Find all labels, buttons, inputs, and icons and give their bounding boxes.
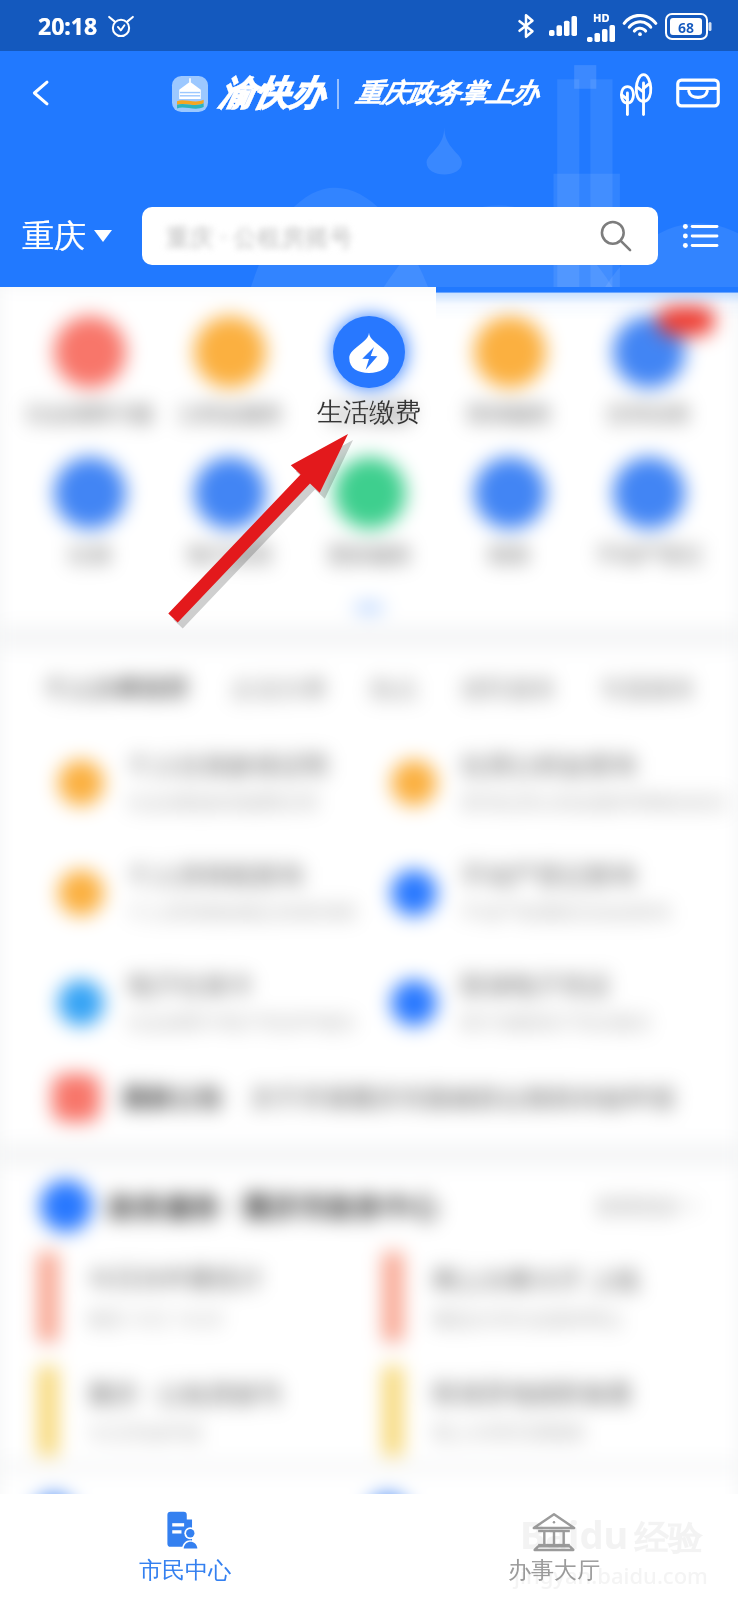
staticText: 企业办事: [231, 674, 327, 704]
button[interactable]: 住房公积金查询: [391, 750, 738, 815]
button[interactable]: 公积金服务: [160, 316, 300, 427]
button[interactable]: 个人社保参保证明: [58, 750, 369, 815]
button[interactable]: 重庆: [22, 216, 112, 256]
button[interactable]: 社保: [20, 457, 160, 568]
staticText: 医保异地就医备案: [433, 1378, 633, 1409]
button[interactable]: 电子证照: [160, 457, 300, 568]
staticText: 个人所得税查询: [128, 860, 303, 891]
button[interactable]: 生活缴费: [300, 316, 440, 427]
button[interactable]: 重庆 · 公租房摇号: [142, 207, 658, 265]
staticText: 渝快办: [218, 72, 323, 115]
staticText: 生活缴费: [317, 396, 421, 429]
button[interactable]: 不动产登记: [580, 457, 718, 568]
staticText: Baidu: [520, 1508, 629, 1560]
button[interactable]: 交管业务: [580, 316, 718, 427]
button[interactable]: 税务: [440, 457, 580, 568]
staticText: 查看更多 >: [596, 1192, 698, 1221]
button[interactable]: Inbox: [670, 65, 726, 121]
staticText: 专题服务: [600, 674, 696, 704]
button[interactable]: 电子社保卡: [58, 970, 369, 1035]
button[interactable]: 社会保障卡服务: [20, 316, 160, 427]
staticText: HD: [593, 10, 610, 25]
staticText: 社会保障卡服务: [20, 401, 160, 427]
staticText: 便民服务: [461, 674, 557, 704]
staticText: 生活缴费: [328, 401, 412, 427]
button[interactable]: 市民中心: [0, 1494, 369, 1600]
staticText: 办事大厅: [508, 1556, 600, 1585]
staticText: 更多服务: [328, 542, 412, 568]
staticText: 不动产登记: [597, 542, 702, 568]
staticText: 个人社保参保证明: [128, 750, 328, 781]
staticText: jingyan.baidu.com: [514, 1560, 708, 1590]
staticText: 电子社保卡: [128, 970, 253, 1001]
staticText: 68: [678, 18, 695, 35]
staticText: 20:18: [38, 10, 98, 41]
staticText: 电子证照: [188, 542, 272, 568]
button[interactable]: 最新公告: [52, 1063, 704, 1133]
staticText: 政务服务 · 重庆市政务中心: [108, 1187, 439, 1225]
staticText: 线上办理无需跑路: [433, 1421, 585, 1445]
button[interactable]: 个人所得税查询: [58, 860, 369, 925]
staticText: 重庆 · 公租房摇号: [88, 1376, 283, 1410]
staticText: 医保电子凭证: [461, 970, 611, 1001]
button[interactable]: Parks: [610, 65, 666, 121]
staticText: 公积金服务: [178, 401, 283, 427]
staticText: 最新公告: [122, 1083, 222, 1114]
staticText: 重庆政务掌上办: [355, 77, 537, 110]
staticText: 不动产登记查询: [461, 860, 636, 891]
button[interactable]: 不动产登记查询: [391, 860, 738, 925]
button[interactable]: Back: [14, 66, 68, 120]
button[interactable]: 更多服务: [300, 457, 440, 568]
staticText: 住房公积金查询: [461, 750, 636, 781]
staticText: 重庆 · 公租房摇号: [166, 220, 353, 253]
button[interactable]: 医保服务: [440, 316, 580, 427]
button[interactable]: 重庆 · 公租房摇号: [38, 1366, 369, 1456]
button[interactable]: 今日办件量统计: [38, 1252, 369, 1342]
button[interactable]: 医保电子凭证: [391, 970, 738, 1035]
staticText: 经验: [634, 1517, 702, 1560]
staticText: 个人所得税纳税记录查询明细: [128, 901, 369, 925]
staticText: 个人办事推荐: [44, 674, 188, 704]
staticText: 关于开展重庆市困难群众救助补贴申报: [250, 1083, 675, 1114]
staticText: 社会保险参保缴费证明: [128, 791, 318, 815]
button[interactable]: 医保异地就医备案: [383, 1366, 738, 1456]
button[interactable]: 办事大厅: [369, 1494, 738, 1600]
staticText: 查询住房公积金缴存明细信息记录: [461, 791, 738, 815]
staticText: 市民中心: [139, 1556, 231, 1585]
button[interactable]: 生活缴费: [299, 316, 439, 429]
staticText: 热点: [370, 674, 418, 704]
staticText: 网上办事大厅 上线: [433, 1262, 640, 1296]
staticText: 今日办件量统计: [88, 1263, 263, 1294]
button[interactable]: Menu: [676, 212, 724, 260]
staticText: 社保: [69, 542, 111, 568]
staticText: 社会保障卡电子凭证申领办理: [128, 1011, 369, 1035]
staticText: 交管业务: [607, 401, 691, 427]
staticText: 重庆: [22, 216, 86, 256]
button[interactable]: 网上办事大厅 上线: [383, 1252, 738, 1342]
staticText: 医保服务: [468, 401, 552, 427]
staticText: 税务: [489, 542, 531, 568]
